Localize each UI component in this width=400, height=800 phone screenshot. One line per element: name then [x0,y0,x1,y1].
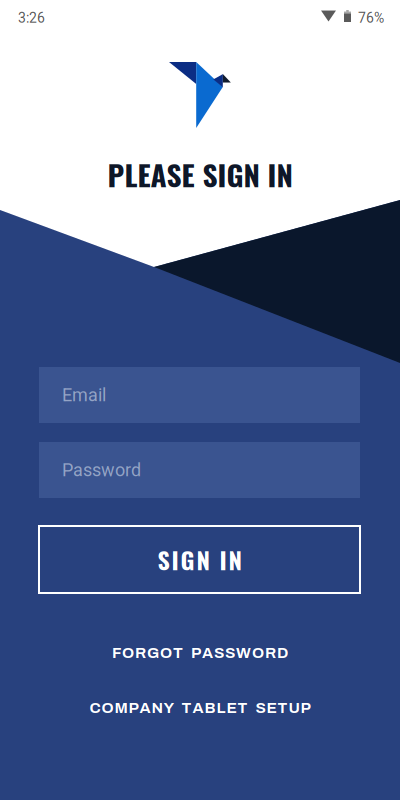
staticText: 76% [358,10,384,26]
staticText: Password [62,459,141,481]
staticText: 3:26 [18,10,45,26]
staticText: PLEASE SIGN IN [107,152,292,196]
staticText: S I G N I N [157,542,241,577]
staticText: F O R G O T P A S S W O R D [112,645,288,661]
button[interactable]: C O M P A N Y T A B L E T S E T U P [0,695,400,721]
staticText: C O M P A N Y T A B L E T S E T U P [89,700,310,716]
staticText: Email [62,384,106,406]
button[interactable]: F O R G O T P A S S W O R D [0,640,400,666]
button[interactable]: Email [39,367,360,423]
button[interactable]: Password [39,442,360,498]
button[interactable]: S I G N I N [39,526,360,593]
